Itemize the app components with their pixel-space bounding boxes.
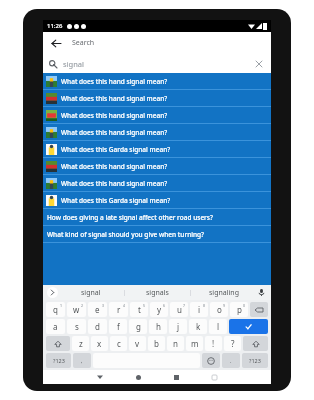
staticText: x bbox=[97, 338, 102, 349]
button[interactable]: h bbox=[149, 319, 167, 334]
staticText: a bbox=[53, 321, 58, 332]
button[interactable]: How does giving a late signal affect oth… bbox=[43, 209, 271, 225]
button[interactable]: What does this hand signal mean? bbox=[43, 107, 271, 123]
staticText: What does this hand signal mean? bbox=[61, 77, 168, 86]
button[interactable]: Search bbox=[229, 319, 268, 334]
button[interactable]: k bbox=[189, 319, 207, 334]
button[interactable]: i bbox=[190, 302, 208, 317]
staticText: signal bbox=[63, 59, 84, 69]
button[interactable]: signaling bbox=[191, 285, 256, 300]
staticText: r bbox=[117, 304, 121, 315]
staticText: signals bbox=[146, 288, 169, 298]
button[interactable]: u bbox=[170, 302, 188, 317]
staticText: l bbox=[217, 321, 220, 332]
staticText: 11:26 bbox=[47, 22, 63, 30]
staticText: m bbox=[191, 338, 199, 349]
staticText: ?123 bbox=[53, 357, 65, 364]
button[interactable]: q bbox=[46, 302, 65, 317]
button[interactable]: ? bbox=[224, 336, 241, 351]
staticText: s bbox=[75, 321, 79, 332]
button[interactable]: t bbox=[130, 302, 148, 317]
staticText: u bbox=[177, 304, 182, 315]
staticText: q bbox=[53, 304, 58, 315]
staticText: Search bbox=[72, 38, 95, 48]
staticText: y bbox=[157, 304, 162, 315]
staticText: ? bbox=[231, 338, 235, 349]
staticText: i bbox=[198, 304, 201, 315]
staticText: 9 bbox=[223, 303, 226, 308]
button[interactable]: c bbox=[110, 336, 127, 351]
staticText: o bbox=[217, 304, 222, 315]
button[interactable]: Voice input bbox=[256, 287, 267, 298]
staticText: 3 bbox=[102, 303, 105, 308]
button[interactable]: What does this Garda signal mean? bbox=[43, 192, 271, 208]
staticText: 8 bbox=[203, 303, 206, 308]
button[interactable]: f bbox=[109, 319, 127, 334]
staticText: k bbox=[196, 321, 201, 332]
button[interactable]: What does this hand signal mean? bbox=[43, 158, 271, 174]
button[interactable]: Hide keyboard bbox=[207, 370, 221, 384]
button[interactable]: What does this hand signal mean? bbox=[43, 90, 271, 106]
button[interactable]: y bbox=[150, 302, 168, 317]
button[interactable]: signals bbox=[125, 285, 190, 300]
button[interactable]: Home bbox=[131, 370, 145, 384]
staticText: 2 bbox=[81, 303, 84, 308]
staticText: z bbox=[79, 338, 83, 349]
button[interactable]: n bbox=[167, 336, 184, 351]
button[interactable]: o bbox=[210, 302, 228, 317]
staticText: signal bbox=[81, 288, 101, 298]
button[interactable]: Emoji bbox=[202, 353, 220, 368]
staticText: t bbox=[138, 304, 141, 315]
button[interactable]: signal bbox=[58, 285, 124, 300]
staticText: What does this hand signal mean? bbox=[61, 179, 168, 188]
button[interactable]: , bbox=[73, 353, 91, 368]
button[interactable]: r bbox=[109, 302, 128, 317]
button[interactable]: z bbox=[72, 336, 89, 351]
staticText: ?123 bbox=[249, 357, 261, 364]
staticText: p bbox=[237, 304, 242, 315]
staticText: 1 bbox=[60, 303, 63, 308]
button[interactable]: g bbox=[129, 319, 147, 334]
staticText: What does this hand signal mean? bbox=[61, 94, 168, 103]
button[interactable]: Shift bbox=[243, 336, 268, 351]
staticText: What does this hand signal mean? bbox=[61, 128, 168, 137]
button[interactable]: ?123 bbox=[46, 353, 71, 368]
button[interactable]: a bbox=[46, 319, 65, 334]
staticText: d bbox=[95, 321, 100, 332]
button[interactable]: Back bbox=[48, 35, 64, 51]
staticText: v bbox=[135, 338, 140, 349]
button[interactable]: What does this hand signal mean? bbox=[43, 175, 271, 191]
button[interactable]: . bbox=[222, 353, 240, 368]
staticText: 7 bbox=[183, 303, 186, 308]
staticText: 5 bbox=[143, 303, 146, 308]
button[interactable]: Back bbox=[93, 370, 107, 384]
button[interactable]: x bbox=[91, 336, 108, 351]
button[interactable]: b bbox=[148, 336, 165, 351]
button[interactable]: j bbox=[169, 319, 187, 334]
button[interactable]: What does this Garda signal mean? bbox=[43, 141, 271, 157]
staticText: What does this Garda signal mean? bbox=[61, 196, 171, 205]
button[interactable]: l bbox=[209, 319, 227, 334]
button[interactable]: p bbox=[230, 302, 248, 317]
button[interactable]: Expand suggestions bbox=[47, 287, 58, 298]
button[interactable]: ! bbox=[205, 336, 222, 351]
button[interactable]: Backspace bbox=[250, 302, 268, 317]
button[interactable]: d bbox=[88, 319, 107, 334]
button[interactable]: What does this hand signal mean? bbox=[43, 124, 271, 140]
staticText: h bbox=[156, 321, 161, 332]
button[interactable]: v bbox=[129, 336, 146, 351]
button[interactable]: What does this hand signal mean? bbox=[43, 73, 271, 89]
button[interactable]: s bbox=[67, 319, 86, 334]
button[interactable]: ?123 bbox=[242, 353, 268, 368]
button[interactable]: w bbox=[67, 302, 86, 317]
button[interactable]: Recents bbox=[169, 370, 183, 384]
button[interactable]: e bbox=[88, 302, 107, 317]
button[interactable]: What kind of signal should you give when… bbox=[43, 226, 271, 242]
button[interactable]: m bbox=[186, 336, 203, 351]
button[interactable]: Shift bbox=[46, 336, 70, 351]
staticText: What does this hand signal mean? bbox=[61, 111, 168, 120]
staticText: j bbox=[177, 321, 180, 332]
button[interactable]: Clear bbox=[253, 58, 265, 70]
staticText: ! bbox=[212, 338, 215, 349]
